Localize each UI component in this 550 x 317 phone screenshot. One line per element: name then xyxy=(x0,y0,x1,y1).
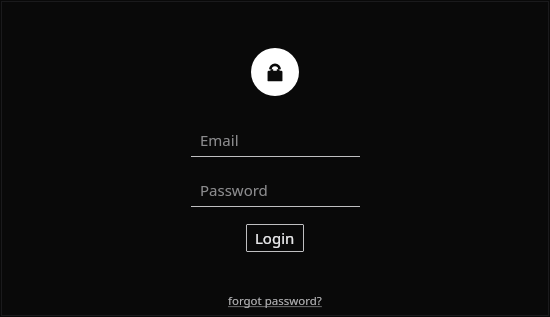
button[interactable]: forgot password? xyxy=(222,290,328,312)
button[interactable]: Password xyxy=(191,178,360,207)
button[interactable]: Email xyxy=(191,128,360,157)
staticText: Email xyxy=(200,130,239,150)
staticText: Login xyxy=(255,228,295,248)
staticText: Password xyxy=(200,180,268,200)
button[interactable]: Login xyxy=(246,224,304,252)
staticText: forgot password? xyxy=(228,293,322,309)
other: Secure login xyxy=(251,48,299,96)
